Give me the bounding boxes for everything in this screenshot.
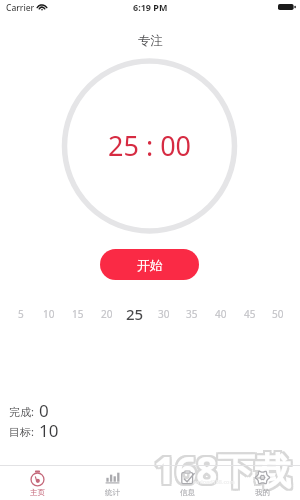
staticText: 完成: [9,404,34,419]
staticText: 168下载 [152,442,290,493]
staticText: 主页 [30,488,45,497]
staticText: 45 [244,307,256,321]
staticText: 专注 [138,33,163,49]
staticText: 10 [39,419,59,442]
button[interactable]: 20 [93,303,121,325]
staticText: 统计 [105,488,120,497]
staticText: 35 [186,307,198,321]
staticText: 15 [72,307,84,321]
staticText: 开始 [137,257,163,273]
staticText: 168下载 [156,442,294,493]
staticText: 25 : 00 [108,127,192,157]
staticText: 0 [39,399,49,422]
staticText: 168下载 [156,446,294,497]
button[interactable]: 25 [121,303,149,325]
staticText: Carrier [6,2,35,14]
button[interactable]: 15 [64,303,92,325]
staticText: 20 [101,307,113,321]
staticText: 25 [126,304,144,324]
staticText: download168.com [187,478,235,485]
staticText: 5 [18,307,24,321]
button[interactable]: Statistics [75,466,150,500]
staticText: 168下载 [154,446,292,497]
staticText: 168下载 [156,444,294,495]
button[interactable]: 35 [178,303,206,325]
button[interactable]: Messages [150,466,225,500]
staticText: 40 [215,307,227,321]
button[interactable]: 开始 [100,249,199,280]
staticText: 信息 [180,488,195,497]
staticText: 6:19 PM [133,1,168,13]
staticText: 168下载 [152,446,290,497]
staticText: 168下载 [154,444,292,495]
button[interactable]: Profile [225,466,300,500]
button[interactable]: 10 [35,303,63,325]
button[interactable]: Home [0,466,75,500]
button[interactable]: 40 [207,303,235,325]
button[interactable]: 45 [236,303,264,325]
staticText: 10 [43,307,55,321]
button[interactable]: 30 [150,303,178,325]
staticText: 我的 [255,488,270,497]
staticText: 目标: [9,424,34,439]
staticText: 168下载 [154,442,292,493]
staticText: 50 [272,307,284,321]
button[interactable]: 5 [7,303,35,325]
staticText: 30 [158,307,170,321]
staticText: 168下载 [152,444,290,495]
button[interactable]: 50 [264,303,292,325]
